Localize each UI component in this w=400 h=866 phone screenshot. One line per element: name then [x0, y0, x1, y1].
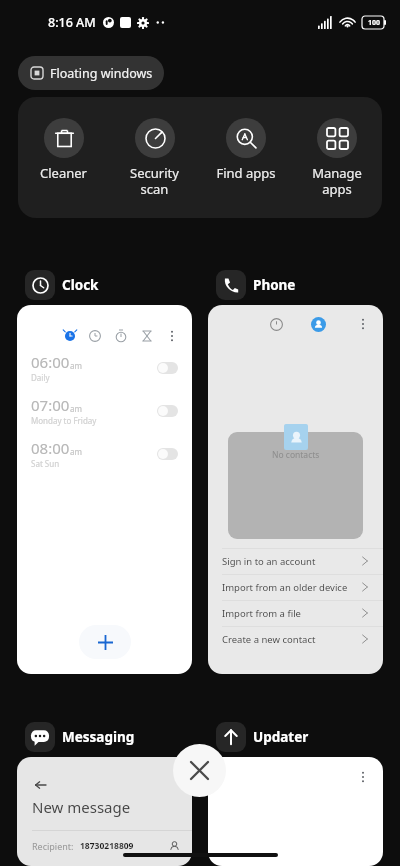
button[interactable]: 06:00	[31, 352, 178, 383]
staticText: Security scan	[130, 164, 179, 197]
button[interactable]: Clock	[25, 270, 99, 300]
staticText: Create a new contact	[222, 633, 316, 646]
staticText: Messaging	[62, 728, 135, 746]
staticText: Recipient:	[32, 840, 74, 852]
button[interactable]: Back	[32, 777, 48, 793]
button[interactable]: Add alarm	[79, 625, 131, 659]
button[interactable]: No contacts	[208, 305, 383, 674]
button[interactable]: Security scan	[109, 118, 200, 197]
button[interactable]	[208, 757, 383, 866]
button[interactable]: Messaging	[25, 722, 135, 752]
button[interactable]: Updater	[216, 722, 309, 752]
button[interactable]: Phone	[216, 270, 296, 300]
button[interactable]: 06:00	[17, 305, 192, 674]
button[interactable]: Toggle alarm	[157, 448, 178, 460]
staticText: am	[70, 446, 82, 457]
button[interactable]: Import from an older device	[208, 574, 383, 600]
button[interactable]: Back	[17, 757, 192, 866]
button[interactable]: Manage apps	[291, 118, 382, 197]
button[interactable]: 07:00	[31, 395, 178, 426]
staticText: 08:00	[31, 438, 70, 458]
staticText: Monday to Friday	[31, 415, 97, 426]
staticText: Import from an older device	[222, 581, 348, 594]
staticText: 18730218809	[80, 840, 134, 852]
staticText: Import from a file	[222, 607, 301, 620]
button[interactable]: Floating windows	[18, 56, 164, 90]
staticText: New message	[32, 797, 131, 817]
staticText: Updater	[253, 728, 309, 746]
staticText: Sign in to an account	[222, 555, 316, 568]
button[interactable]: Find apps	[200, 118, 291, 182]
button[interactable]: Toggle alarm	[157, 405, 178, 417]
staticText: am	[70, 360, 82, 371]
button[interactable]: Sign in to an account	[208, 548, 383, 574]
button[interactable]: Import from a file	[208, 600, 383, 626]
staticText: Manage apps	[312, 164, 362, 197]
staticText: 07:00	[31, 395, 70, 415]
staticText: Daily	[31, 372, 50, 383]
staticText: 8:16 AM	[48, 14, 96, 31]
button[interactable]: Cleaner	[18, 118, 109, 182]
staticText: Floating windows	[50, 65, 153, 82]
staticText: 06:00	[31, 352, 70, 372]
staticText: Find apps	[216, 164, 276, 182]
staticText: Clock	[62, 276, 99, 294]
staticText: Sat Sun	[31, 458, 60, 469]
button[interactable]: Toggle alarm	[157, 362, 178, 374]
staticText: 100	[368, 18, 381, 28]
staticText: am	[70, 403, 82, 414]
button[interactable]: Close all	[173, 744, 226, 797]
button[interactable]: Create a new contact	[208, 626, 383, 652]
staticText: Phone	[253, 276, 296, 294]
staticText: Cleaner	[40, 164, 87, 182]
staticText: No contacts	[272, 449, 320, 461]
button[interactable]: 08:00	[31, 438, 178, 469]
